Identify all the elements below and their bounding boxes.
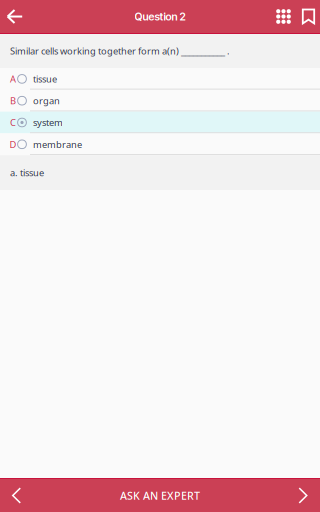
staticText: a. tissue <box>10 166 44 179</box>
button[interactable]: A <box>0 68 320 90</box>
button[interactable]: ASK AN EXPERT <box>70 479 250 512</box>
button[interactable]: Show all questions <box>270 0 297 33</box>
button[interactable]: B <box>0 90 320 112</box>
staticText: membrane <box>33 138 82 150</box>
button[interactable]: Bookmark <box>297 0 320 33</box>
staticText: Similar cells working together form a(n)… <box>10 45 230 57</box>
staticText: B <box>10 94 16 107</box>
staticText: ASK AN EXPERT <box>120 488 200 503</box>
staticText: system <box>33 116 63 129</box>
staticText: D <box>9 138 16 150</box>
staticText: organ <box>33 94 60 107</box>
staticText: A <box>10 73 16 85</box>
staticText: C <box>10 116 16 129</box>
button[interactable]: Back <box>0 0 29 33</box>
button[interactable]: C <box>0 112 320 133</box>
staticText: Question 2 <box>134 10 185 23</box>
button[interactable]: D <box>0 133 320 155</box>
button[interactable]: Previous question <box>0 479 33 512</box>
button[interactable]: Next question <box>286 479 320 512</box>
staticText: tissue <box>33 73 57 85</box>
